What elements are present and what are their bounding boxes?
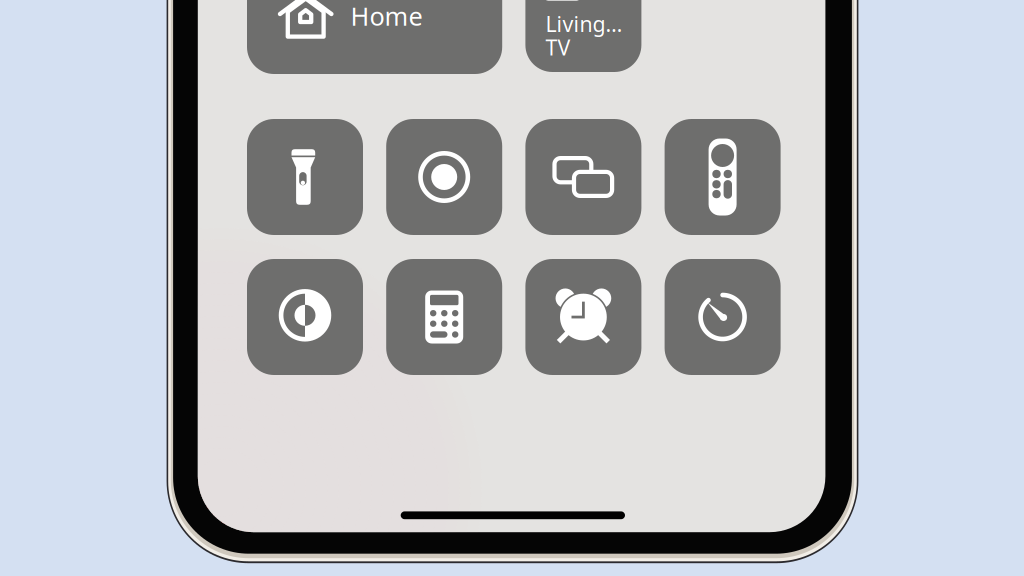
button[interactable]: Dark Mode	[247, 259, 363, 375]
button[interactable]: Timer	[665, 259, 781, 375]
staticText: TV	[545, 33, 570, 61]
button[interactable]: Alarm	[525, 259, 641, 375]
button[interactable]: Screen Recording	[386, 119, 502, 235]
button[interactable]: Flashlight	[247, 119, 363, 235]
button[interactable]: Living…	[525, 0, 641, 72]
button[interactable]: Home	[247, 0, 502, 74]
button[interactable]: Apple TV Remote	[665, 119, 781, 235]
button[interactable]: Screen Mirroring	[525, 119, 641, 235]
staticText: Living…	[545, 9, 622, 38]
button[interactable]: Calculator	[386, 259, 502, 375]
staticText: Home	[350, 0, 422, 33]
